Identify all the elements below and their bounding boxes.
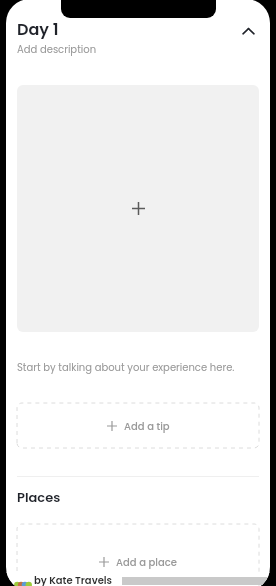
staticText: Add a tip: [124, 419, 170, 433]
staticText: Start by talking about your experience h…: [17, 360, 235, 374]
button[interactable]: Add a tip: [17, 403, 259, 448]
staticText: Places: [17, 488, 61, 506]
staticText: Add description: [17, 42, 97, 56]
staticText: Day 1: [17, 18, 59, 40]
staticText: by Kate Travels: [34, 573, 113, 586]
button[interactable]: Add photo: [17, 85, 259, 332]
button[interactable]: Add a place: [17, 524, 259, 586]
staticText: Add a place: [116, 555, 177, 569]
button[interactable]: Collapse day: [235, 18, 261, 44]
